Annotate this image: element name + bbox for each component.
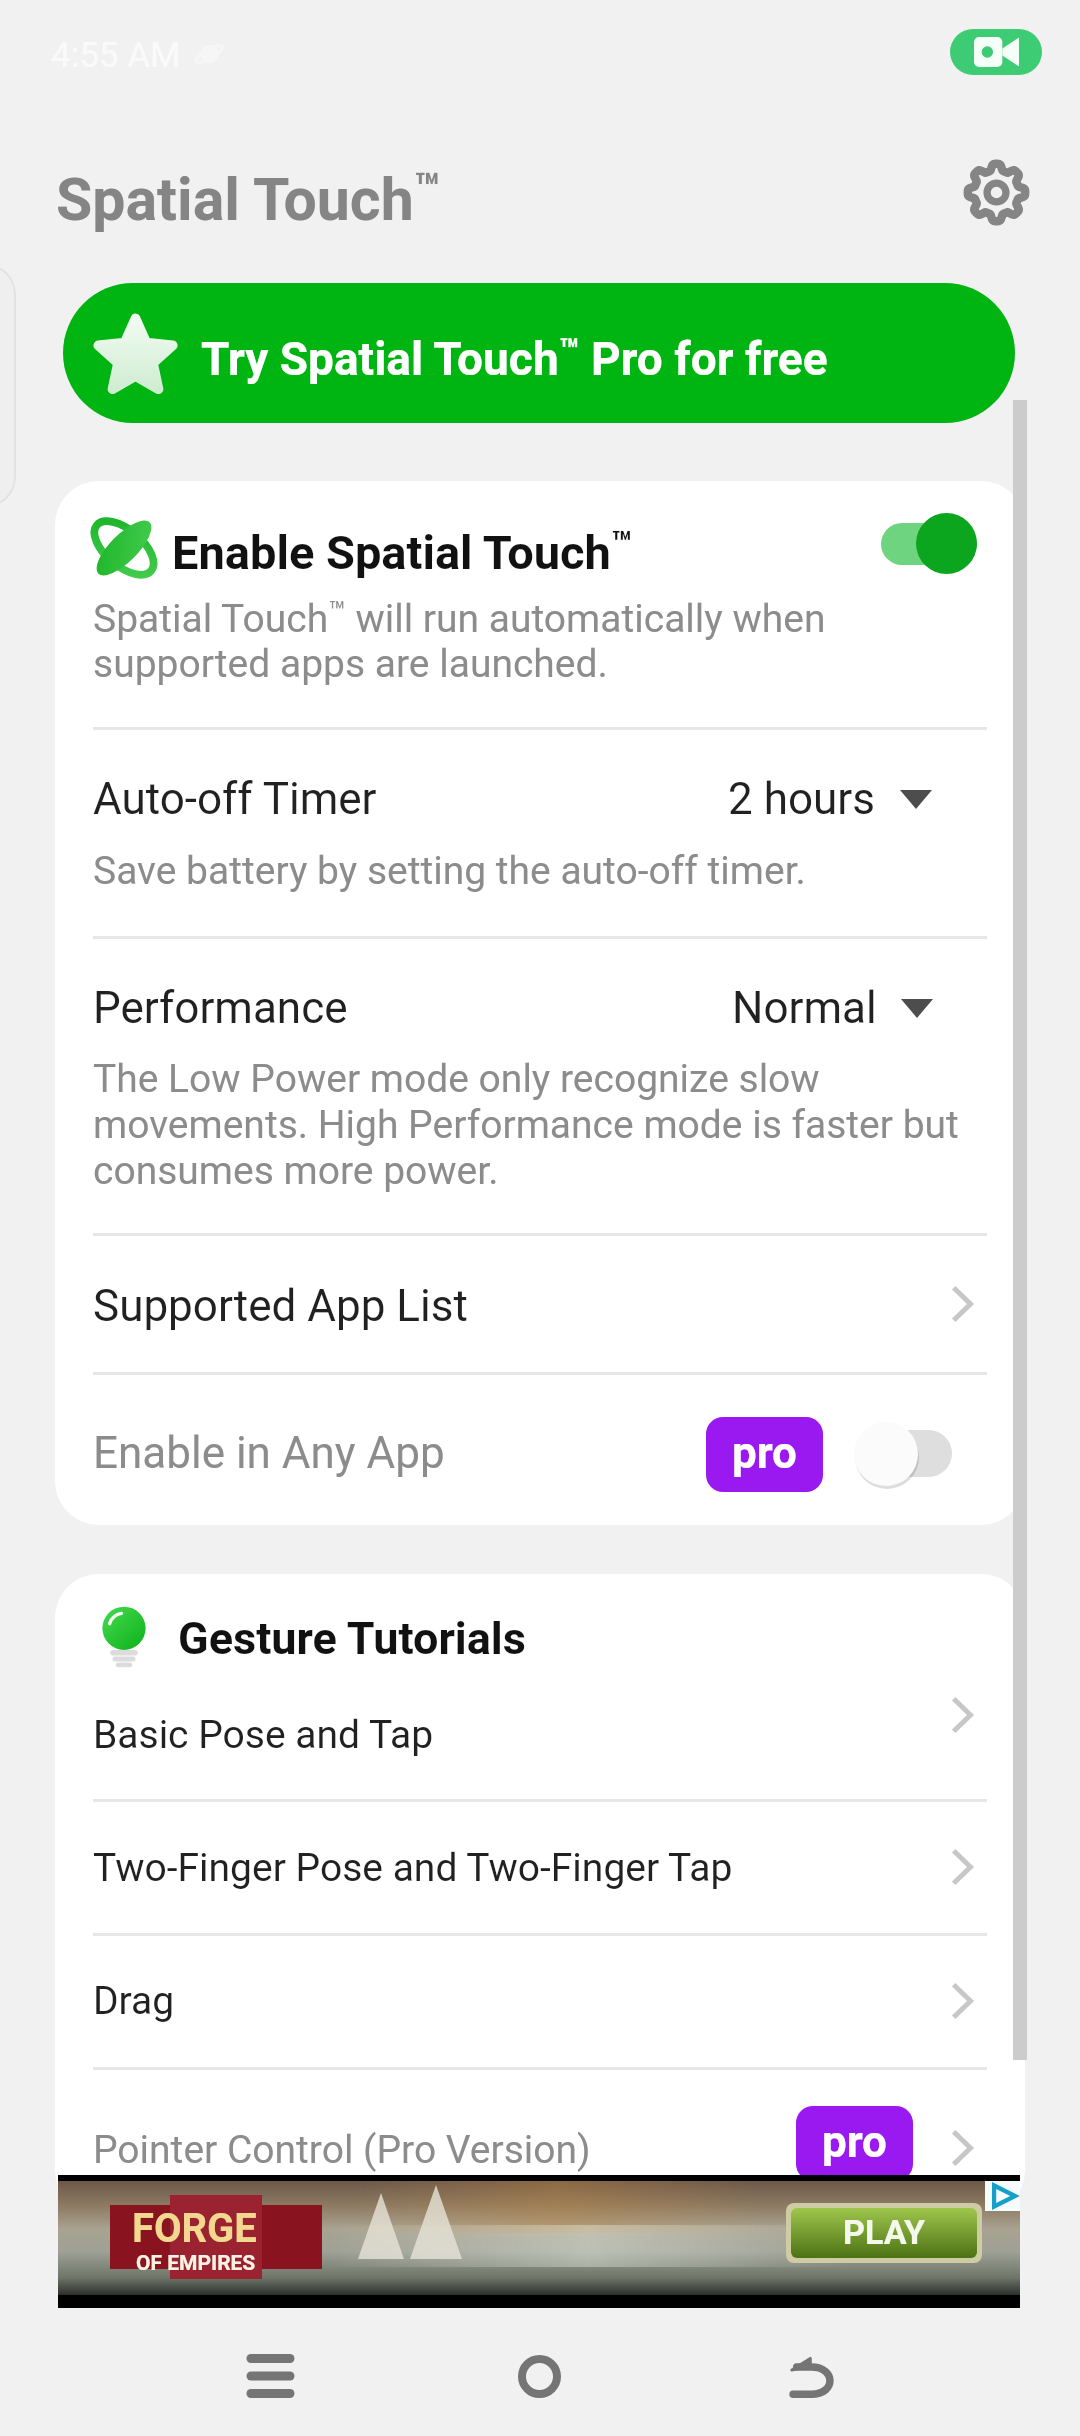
staticText: Supported App List [93,1280,468,1332]
staticText: Save battery by setting the auto-off tim… [93,848,806,894]
staticText: Normal [732,982,877,1034]
staticText: Enable Spatial Touch™ [172,524,633,580]
staticText: Auto-off Timer [93,773,377,825]
staticText: PLAY [843,2212,926,2252]
button[interactable] [55,730,1025,936]
button[interactable] [55,1235,1025,1372]
staticText: Try Spatial Touch™ Pro for free [201,331,828,386]
staticText: 4:55 AM [51,35,181,76]
button[interactable]: Recent apps [215,2321,325,2431]
button[interactable] [55,2069,1025,2214]
staticText: Spatial Touch™ [56,164,441,234]
staticText: Spatial Touch™ will run automatically wh… [93,595,826,687]
button[interactable]: Settings [941,137,1051,247]
staticText: Pointer Control (Pro Version) [93,2127,591,2173]
staticText: Gesture Tutorials [178,1612,526,1665]
other: Screen recording [950,29,1042,75]
staticText: pro [732,1427,797,1479]
button[interactable] [55,481,1025,727]
button[interactable]: Try Spatial Touch™ Pro for free [63,283,1015,423]
staticText: Enable in Any App [93,1427,445,1479]
staticText: pro [822,2116,887,2168]
staticText: Drag [93,1978,175,2024]
button[interactable] [55,1374,1025,1525]
button[interactable]: Home [484,2321,594,2431]
button[interactable]: FORGE [58,2175,1020,2308]
staticText: FORGE [132,2205,257,2252]
staticText: OF EMPIRES [136,2251,256,2276]
staticText: 2 hours [728,773,875,825]
staticText: Basic Pose and Tap [93,1712,434,1758]
button[interactable] [55,938,1025,1233]
button[interactable] [55,1679,1025,1799]
staticText: The Low Power mode only recognize slow m… [93,1056,959,1194]
button[interactable]: Back [756,2321,866,2431]
staticText: Performance [93,982,348,1034]
staticText: Two-Finger Pose and Two-Finger Tap [93,1845,733,1891]
button[interactable] [55,1801,1025,1933]
button[interactable] [55,1935,1025,2067]
